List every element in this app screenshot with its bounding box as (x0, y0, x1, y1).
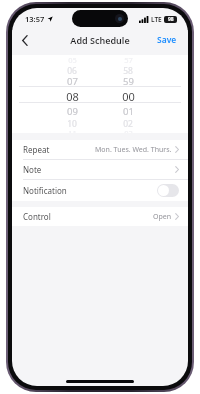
staticText: 08 (66, 89, 79, 104)
staticText: 09 (67, 105, 78, 118)
staticText: Save (157, 34, 177, 46)
staticText: 10 (67, 118, 77, 128)
staticText: LTE (151, 15, 162, 24)
staticText: 03 (124, 128, 133, 133)
staticText: 02 (123, 118, 133, 128)
staticText: Open (153, 212, 172, 222)
button[interactable]: Note (12, 160, 188, 179)
staticText: Notification (23, 185, 67, 196)
button[interactable]: Save (146, 30, 188, 50)
staticText: 06 (67, 65, 77, 75)
staticText: 11 (68, 128, 77, 133)
button[interactable]: Back (12, 30, 38, 50)
staticText: Mon. Tues. Wed. Thurs. (95, 145, 172, 155)
staticText: Control (23, 211, 51, 222)
staticText: 13:57 (25, 14, 45, 24)
staticText: Add Schedule (70, 34, 130, 46)
staticText: 59 (123, 75, 134, 88)
staticText: 05 (68, 55, 77, 65)
staticText: 57 (124, 55, 133, 65)
staticText: 01 (123, 105, 134, 118)
button[interactable]: Notification (12, 180, 188, 201)
staticText: Note (23, 164, 42, 175)
staticText: 98 (168, 16, 174, 23)
staticText: 00 (122, 89, 135, 104)
staticText: Repeat (23, 144, 50, 155)
button[interactable]: Notification toggle (157, 184, 179, 197)
staticText: 07 (67, 75, 78, 88)
button[interactable]: Control (12, 207, 188, 226)
staticText: 58 (123, 65, 133, 75)
button[interactable]: Repeat (12, 140, 188, 159)
